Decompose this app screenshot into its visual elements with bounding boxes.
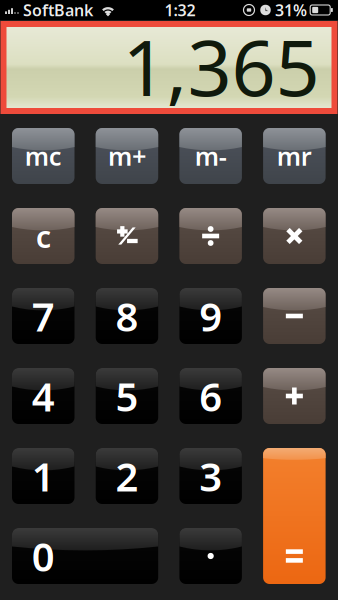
button[interactable]: 2 (96, 448, 158, 504)
button[interactable]: 4 (12, 368, 74, 424)
button[interactable]: 0 (12, 528, 158, 584)
button[interactable]: mc (12, 128, 74, 184)
staticText: 4 (32, 369, 55, 422)
staticText: 1,365 (122, 15, 319, 117)
staticText: mr (277, 139, 312, 173)
staticText: 6 (199, 369, 222, 422)
staticText: 7 (32, 289, 55, 342)
staticText: m- (195, 139, 227, 173)
button[interactable]: c (12, 208, 74, 264)
button[interactable]: Plus (263, 368, 326, 424)
staticText: mc (25, 139, 62, 173)
button[interactable]: 5 (96, 368, 158, 424)
button[interactable]: 9 (179, 288, 242, 344)
staticText: 1 (32, 449, 55, 502)
staticText: 1:32 (164, 0, 195, 21)
staticText: 3 (199, 449, 222, 502)
button[interactable]: 7 (12, 288, 74, 344)
staticText: 8 (115, 289, 138, 342)
button[interactable]: m+ (96, 128, 158, 184)
staticText: SoftBank (19, 0, 93, 21)
button[interactable]: 6 (179, 368, 242, 424)
staticText: 2 (115, 449, 138, 502)
button[interactable]: m- (179, 128, 242, 184)
staticText: 9 (199, 289, 222, 342)
button[interactable]: mr (263, 128, 326, 184)
button[interactable]: 1 (12, 448, 74, 504)
staticText: 5 (115, 369, 138, 422)
staticText: m+ (108, 139, 146, 173)
staticText: 0 (32, 529, 55, 582)
staticText: 31% (271, 0, 307, 21)
button[interactable]: Multiply (263, 208, 326, 264)
button[interactable]: 3 (179, 448, 242, 504)
staticText: c (36, 216, 51, 256)
button[interactable]: Plus minus (96, 208, 158, 264)
button[interactable] (263, 448, 326, 584)
button[interactable]: 8 (96, 288, 158, 344)
button[interactable]: Divide (179, 208, 242, 264)
button[interactable]: Minus (263, 288, 326, 344)
button[interactable]: Decimal point (179, 528, 242, 584)
